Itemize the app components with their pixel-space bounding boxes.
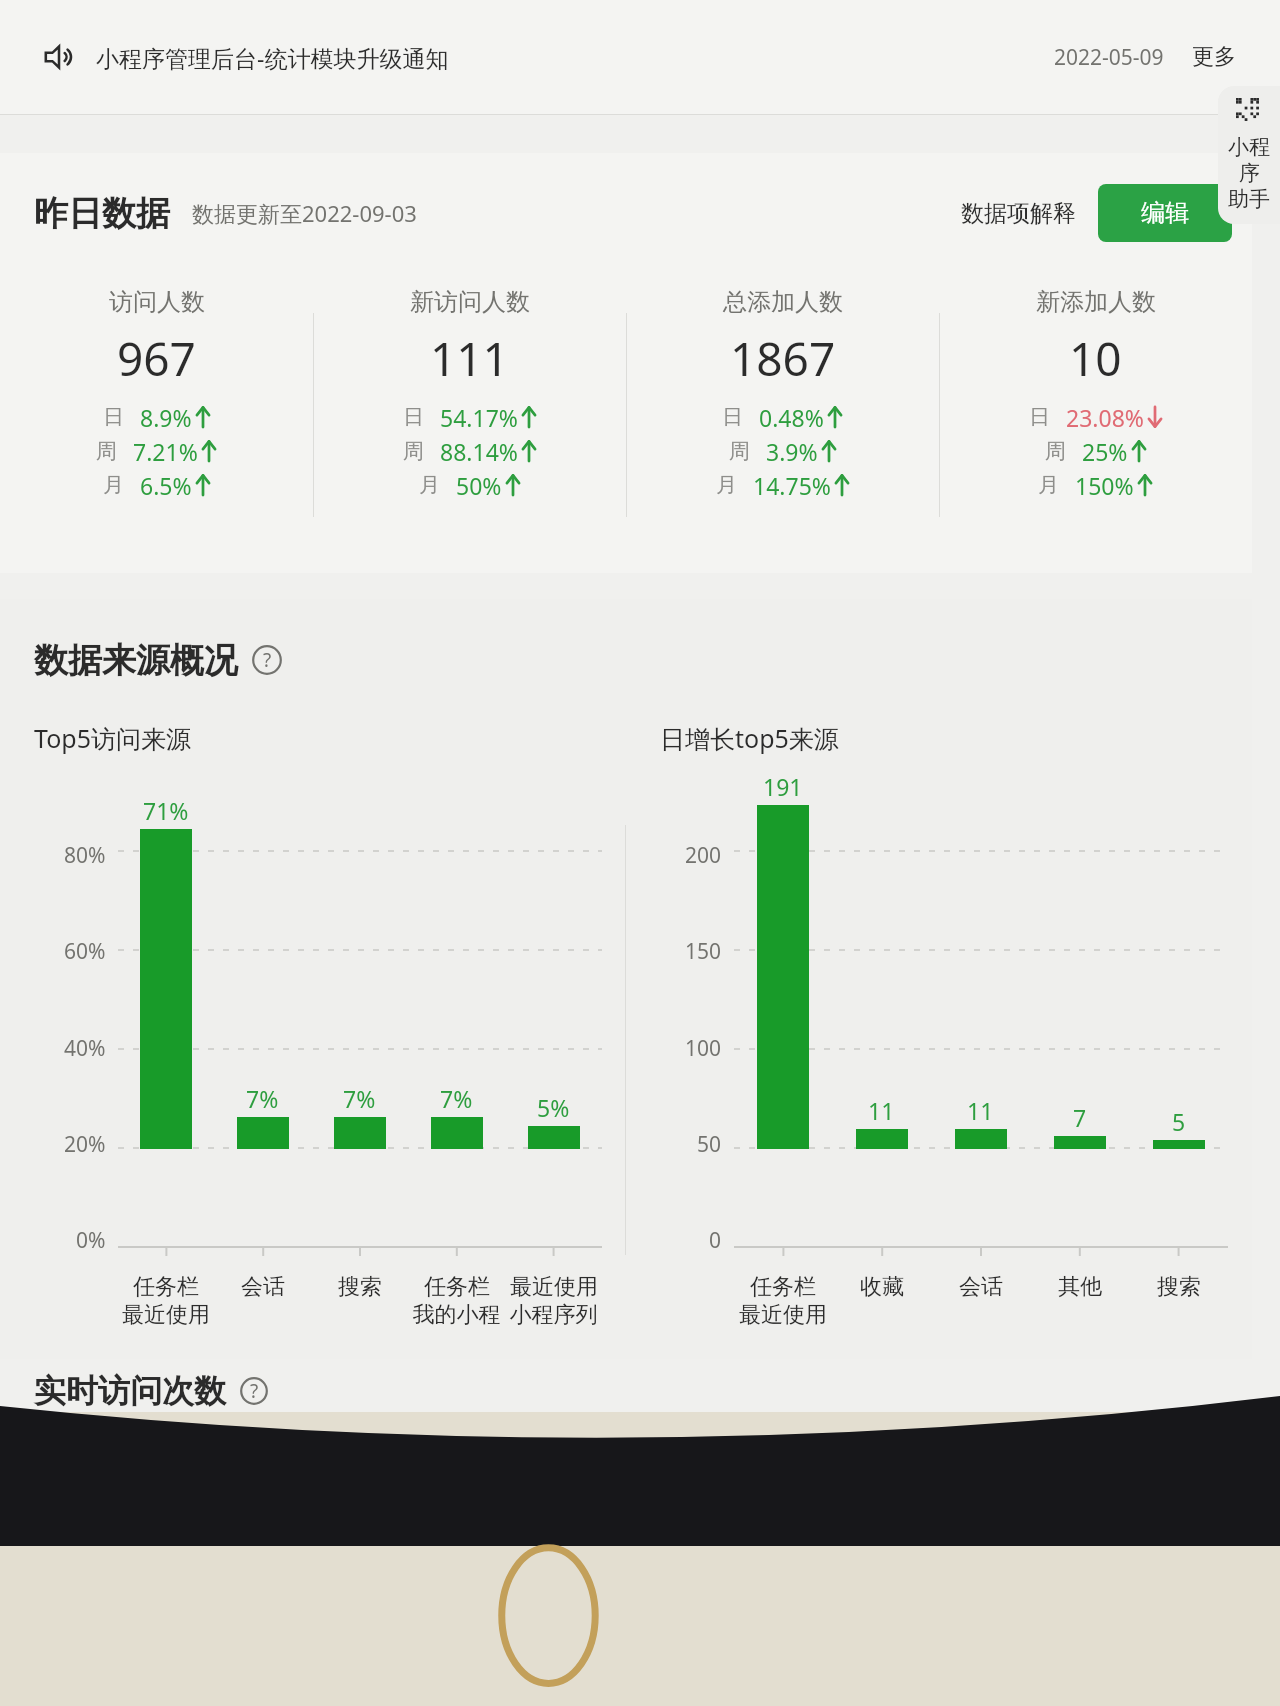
staticText: 150: [685, 937, 722, 966]
staticText: 搜索: [338, 1273, 382, 1301]
staticText: 任务栏: [133, 1273, 199, 1301]
staticText: 最近使用: [510, 1273, 598, 1301]
staticText: 967: [117, 327, 196, 390]
staticText: 80%: [64, 841, 106, 870]
staticText: 1867: [730, 327, 836, 390]
button[interactable]: 编辑: [1098, 184, 1232, 242]
staticText: 60%: [64, 937, 106, 966]
staticText: 最近使用: [122, 1301, 210, 1329]
staticText: 更多: [1192, 43, 1236, 71]
staticText: 月: [716, 472, 737, 498]
staticText: 会话: [241, 1273, 285, 1301]
staticText: 总添加人数: [723, 287, 843, 317]
staticText: 其他: [1058, 1273, 1102, 1301]
staticText: ?: [263, 647, 272, 673]
staticText: 会话: [959, 1273, 1003, 1301]
staticText: 数据项解释: [961, 199, 1076, 228]
staticText: 月: [419, 472, 440, 498]
staticText: 访问人数: [109, 287, 205, 317]
staticText: 50%: [456, 470, 502, 501]
staticText: 数据来源概况: [34, 639, 238, 682]
button[interactable]: Mini Program Assistant: [1218, 86, 1280, 224]
other: Announcement: [44, 42, 74, 72]
staticText: 2022-05-09: [1054, 43, 1164, 72]
staticText: 我的小程序: [408, 1301, 505, 1329]
staticText: 7%: [440, 1083, 473, 1114]
button[interactable]: 访问人数: [0, 273, 313, 557]
staticText: 7: [1073, 1102, 1087, 1133]
staticText: 150%: [1075, 470, 1134, 501]
staticText: 50: [697, 1130, 722, 1159]
staticText: 111: [430, 327, 509, 390]
staticText: 54.17%: [440, 402, 518, 433]
staticText: 编辑: [1141, 198, 1189, 228]
staticText: 日增长top5来源: [660, 721, 839, 755]
staticText: 新添加人数: [1036, 287, 1156, 317]
staticText: 40%: [64, 1034, 106, 1063]
button[interactable]: 新访问人数: [313, 273, 626, 557]
staticText: 日: [722, 404, 743, 430]
staticText: 数据更新至2022-09-03: [192, 198, 417, 228]
staticText: 任务栏: [750, 1273, 816, 1301]
staticText: 191: [763, 771, 803, 802]
staticText: 日: [403, 404, 424, 430]
staticText: 周: [96, 438, 117, 464]
staticText: 8.9%: [140, 402, 192, 433]
staticText: 任务栏: [424, 1273, 490, 1301]
staticText: 小程序管理后台-统计模块升级通知: [96, 42, 449, 73]
staticText: 6.5%: [140, 470, 192, 501]
button[interactable]: Help: [252, 645, 282, 675]
staticText: 月: [1038, 472, 1059, 498]
staticText: 88.14%: [440, 436, 518, 467]
button[interactable]: 更多: [1192, 43, 1236, 71]
staticText: 71%: [143, 795, 189, 826]
staticText: 23.08%: [1066, 402, 1144, 433]
staticText: 7%: [343, 1083, 376, 1114]
staticText: 5%: [537, 1092, 570, 1123]
button[interactable]: 新添加人数: [939, 273, 1252, 557]
staticText: 小程: [1228, 134, 1270, 160]
staticText: 新访问人数: [410, 287, 530, 317]
staticText: 昨日数据: [34, 192, 170, 235]
other: Help: [240, 1377, 268, 1405]
staticText: 0%: [76, 1226, 106, 1255]
staticText: ?: [250, 1378, 259, 1404]
other: Help: [252, 645, 282, 675]
staticText: 5: [1172, 1106, 1186, 1137]
staticText: 周: [403, 438, 424, 464]
staticText: 搜索: [1157, 1273, 1201, 1301]
staticText: 25%: [1082, 436, 1128, 467]
staticText: 月: [103, 472, 124, 498]
staticText: 100: [685, 1034, 722, 1063]
staticText: Top5访问来源: [34, 721, 191, 755]
staticText: 10: [1069, 327, 1122, 390]
staticText: 日: [1029, 404, 1050, 430]
staticText: 3.9%: [766, 436, 818, 467]
staticText: 0: [709, 1226, 722, 1255]
staticText: 助手: [1228, 186, 1270, 212]
button[interactable]: 总添加人数: [626, 273, 939, 557]
staticText: 14.75%: [753, 470, 831, 501]
button[interactable]: Announcement: [0, 0, 1280, 114]
staticText: 最近使用: [739, 1301, 827, 1329]
staticText: 日: [103, 404, 124, 430]
staticText: 0.48%: [759, 402, 824, 433]
staticText: 实时访问次数: [34, 1371, 226, 1411]
staticText: 11: [967, 1095, 994, 1126]
staticText: 200: [685, 841, 722, 870]
staticText: 序: [1239, 160, 1260, 186]
staticText: 周: [1045, 438, 1066, 464]
staticText: 11: [868, 1095, 895, 1126]
staticText: 收藏: [860, 1273, 904, 1301]
staticText: 7%: [246, 1083, 279, 1114]
staticText: 周: [729, 438, 750, 464]
button[interactable]: 数据项解释: [961, 199, 1076, 228]
staticText: 20%: [64, 1130, 106, 1159]
staticText: 7.21%: [133, 436, 198, 467]
staticText: 小程序列表: [505, 1301, 602, 1329]
